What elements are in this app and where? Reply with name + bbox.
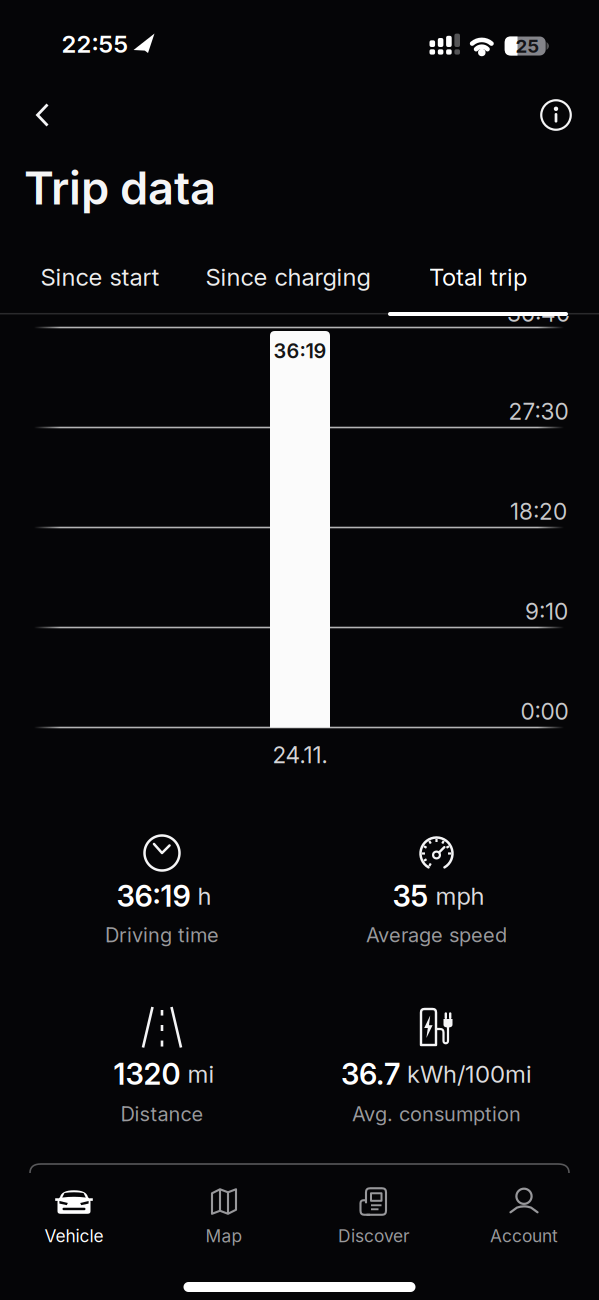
staticText: Distance	[120, 1102, 203, 1126]
staticText: Since charging	[205, 263, 370, 291]
staticText: 36:40	[507, 300, 570, 327]
staticText: Vehicle	[44, 1226, 103, 1246]
button[interactable]: Since charging	[195, 253, 381, 301]
staticText: Trip data	[24, 161, 216, 215]
staticText: 27:30	[508, 398, 568, 425]
staticText: Avg. consumption	[352, 1102, 521, 1126]
staticText: Average speed	[366, 923, 507, 947]
staticText: mi	[187, 1060, 214, 1088]
staticText: Map	[205, 1226, 242, 1246]
staticText: Discover	[338, 1226, 410, 1246]
staticText: h	[197, 882, 211, 910]
button[interactable]: Back	[21, 97, 65, 133]
staticText: 0:00	[520, 698, 568, 725]
staticText: 1320	[113, 1057, 180, 1091]
button[interactable]: Discover	[304, 1178, 444, 1254]
staticText: kWh/100mi	[407, 1060, 532, 1088]
staticText: 18:20	[510, 498, 567, 525]
button[interactable]: Since start	[15, 253, 185, 301]
button[interactable]: Total trip	[388, 253, 568, 301]
staticText: Total trip	[429, 263, 527, 291]
staticText: 36:19	[273, 339, 326, 363]
button[interactable]: Info	[534, 93, 578, 137]
button[interactable]: Account	[454, 1178, 594, 1254]
staticText: 25	[515, 35, 539, 57]
staticText: Driving time	[105, 923, 219, 947]
staticText: 35	[392, 879, 428, 913]
staticText: mph	[435, 882, 484, 910]
staticText: 36:19	[116, 879, 190, 913]
staticText: 24.11.	[272, 742, 327, 768]
staticText: 36.7	[341, 1057, 400, 1091]
button[interactable]: Map	[154, 1178, 294, 1254]
staticText: Account	[490, 1226, 558, 1246]
button[interactable]: Vehicle	[4, 1178, 144, 1254]
staticText: 22:55	[61, 30, 128, 58]
staticText: Since start	[40, 263, 159, 291]
staticText: 9:10	[525, 598, 568, 625]
